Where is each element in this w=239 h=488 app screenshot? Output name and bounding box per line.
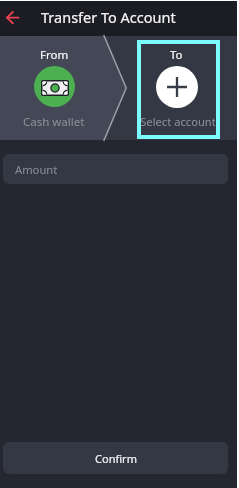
button[interactable]: Confirm: [3, 442, 228, 474]
staticText: Confirm: [95, 451, 137, 466]
staticText: Cash wallet: [23, 114, 85, 130]
button[interactable]: Back: [0, 0, 34, 36]
staticText: Amount: [15, 162, 58, 177]
staticText: Select account: [140, 114, 215, 129]
staticText: To: [170, 47, 183, 63]
button[interactable]: From: [0, 36, 108, 140]
button[interactable]: Amount: [3, 154, 228, 184]
staticText: Transfer To Account: [41, 7, 176, 27]
button[interactable]: To: [141, 44, 216, 135]
staticText: From: [40, 47, 69, 63]
